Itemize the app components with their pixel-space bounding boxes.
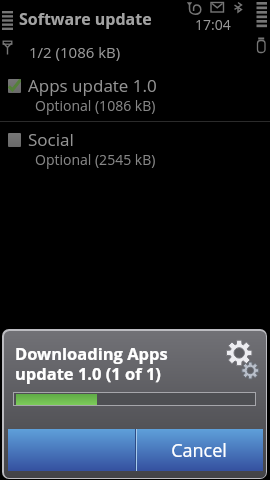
staticText: Downloading Apps (15, 342, 168, 364)
staticText: Optional (2545 kB) (35, 150, 156, 169)
staticText: Social (28, 128, 74, 151)
staticText: Optional (1086 kB) (35, 96, 156, 115)
button[interactable]: Social (0, 122, 270, 174)
staticText: 17:04 (195, 15, 231, 34)
staticText: Apps update 1.0 (28, 74, 157, 97)
button[interactable]: Menu (0, 6, 16, 30)
button[interactable]: Hide (8, 429, 135, 471)
staticText: Software update (19, 8, 152, 30)
staticText: update 1.0 (1 of 1) (15, 362, 161, 384)
staticText: Cancel (171, 438, 227, 463)
button[interactable]: Cancel (135, 429, 263, 471)
staticText: 1/2 (1086 kB) (29, 42, 121, 62)
button[interactable]: Apps update 1.0 (0, 68, 270, 120)
